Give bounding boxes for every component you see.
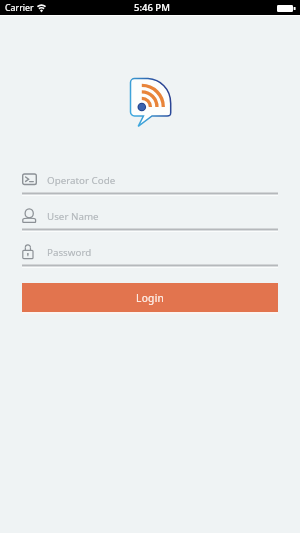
button[interactable]: User Name <box>22 203 278 232</box>
staticText: Login <box>136 291 165 305</box>
staticText: 5:46 PM <box>134 1 170 14</box>
staticText: User Name <box>47 210 99 223</box>
button[interactable]: Password <box>22 239 278 268</box>
button[interactable]: Login <box>22 283 278 312</box>
other: Wi-Fi signal <box>37 4 46 12</box>
staticText: Carrier <box>5 2 34 14</box>
button[interactable]: Operator Code <box>22 167 278 196</box>
staticText: Password <box>47 246 92 259</box>
staticText: Operator Code <box>47 174 116 187</box>
other: App logo <box>130 78 172 130</box>
other: Battery full <box>277 5 296 12</box>
